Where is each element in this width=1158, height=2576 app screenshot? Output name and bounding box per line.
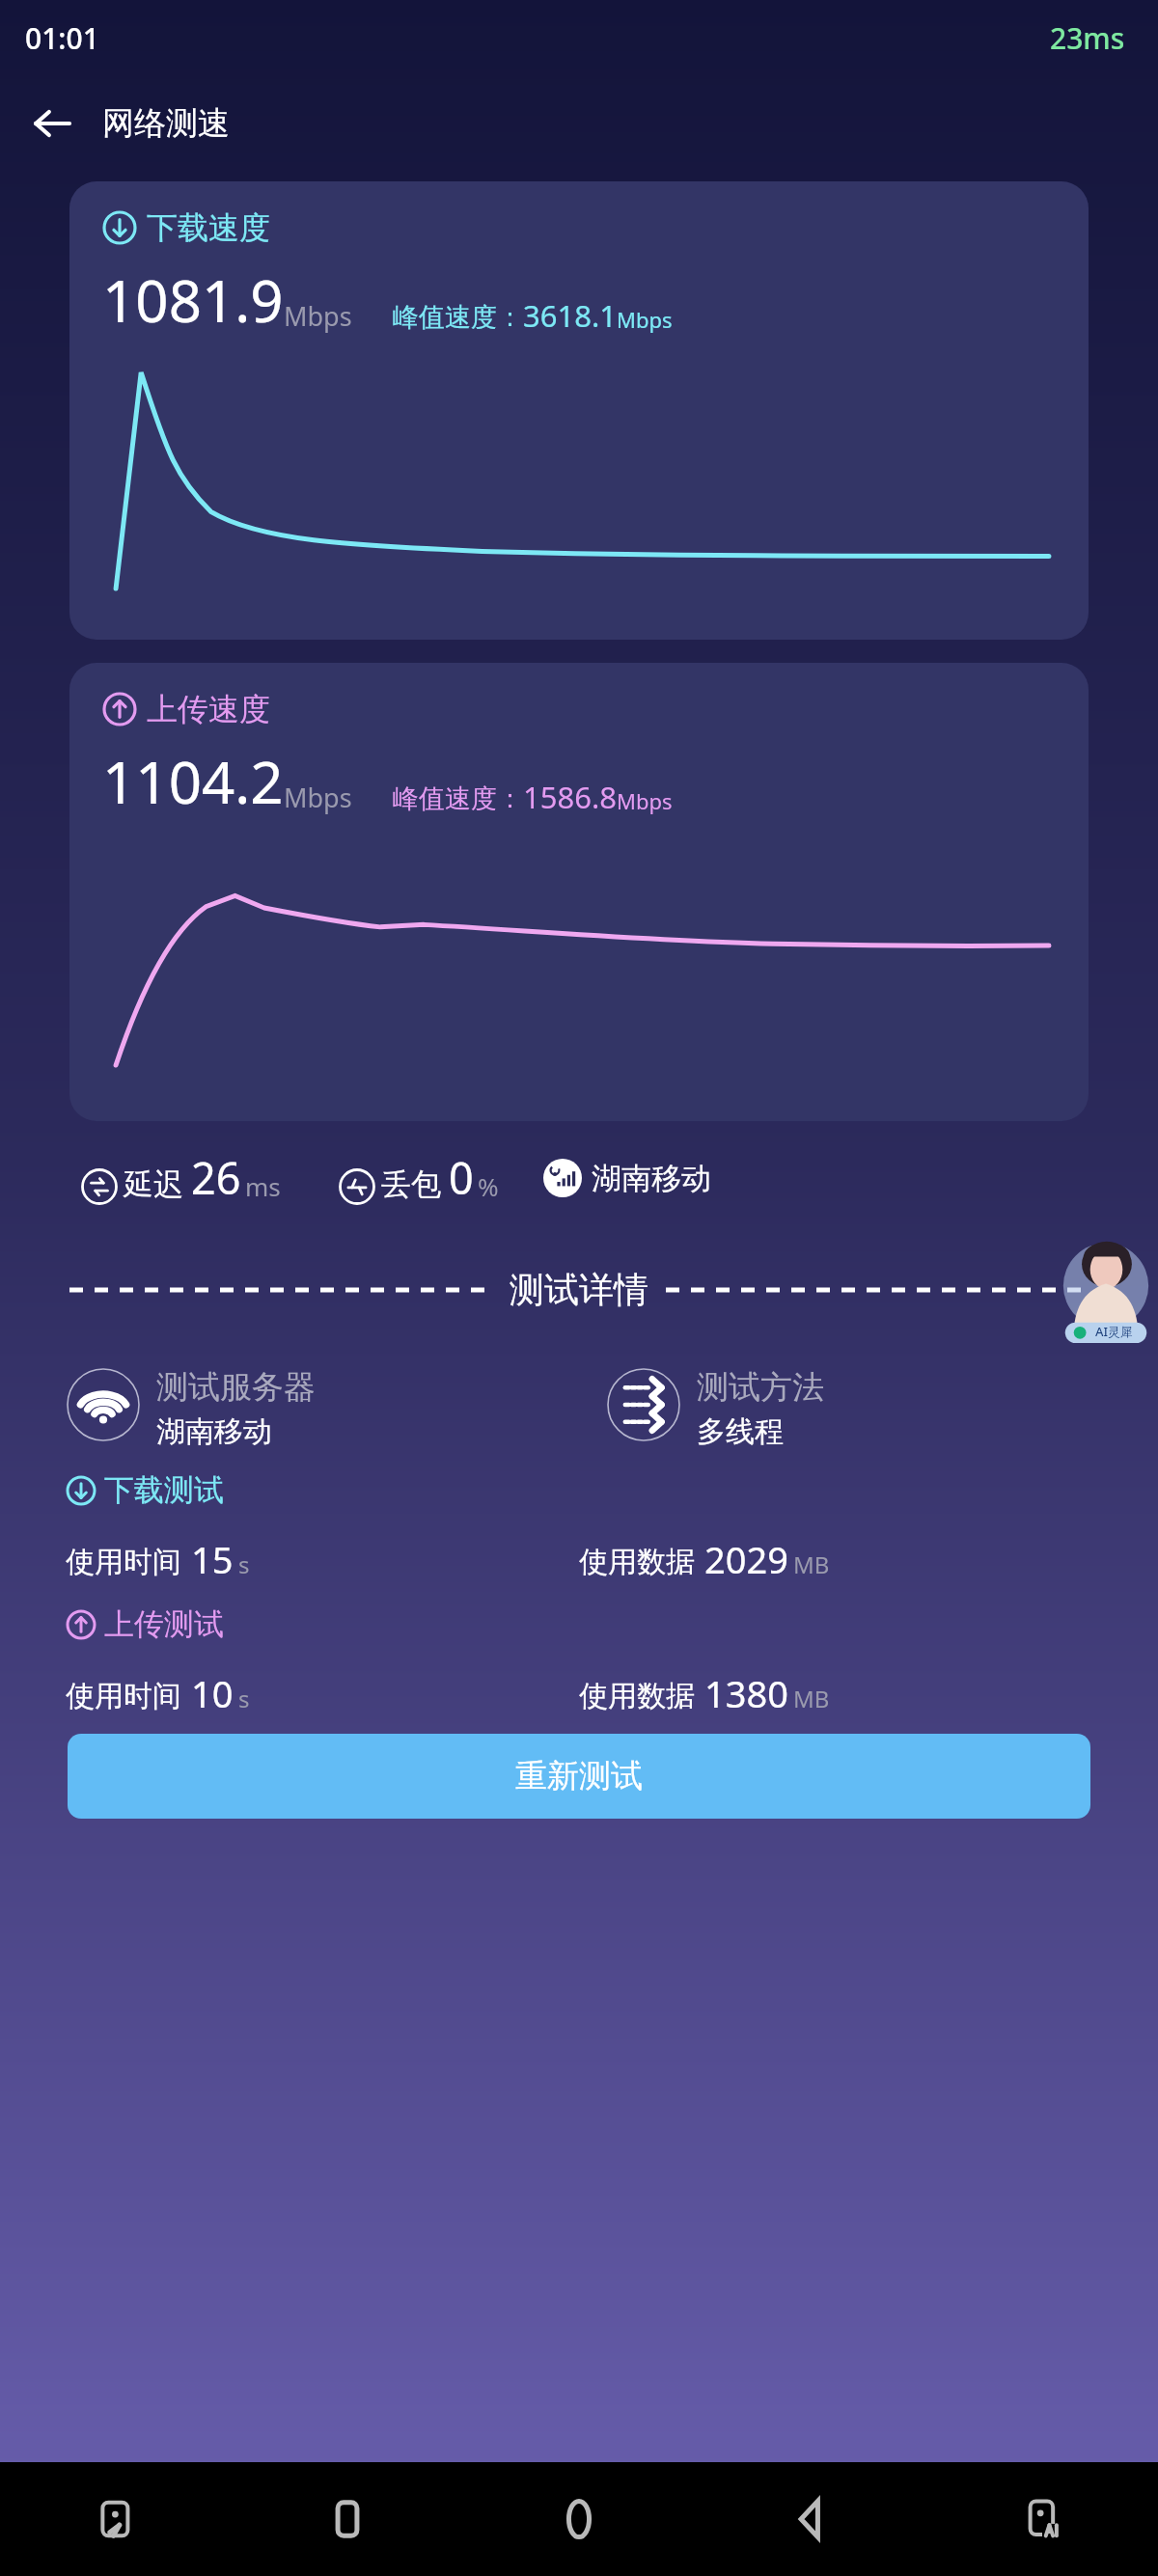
button[interactable]: Screenshot (0, 2462, 232, 2576)
staticText: 峰值速度： (393, 782, 523, 815)
button[interactable]: AI 灵犀 (1060, 1235, 1152, 1343)
button[interactable]: 重新测试 (68, 1734, 1090, 1819)
staticText: 1380 (704, 1668, 788, 1718)
button[interactable]: 测试服务器 (66, 1367, 606, 1450)
button[interactable]: Recents (232, 2462, 463, 2576)
staticText: AI灵犀 (1095, 1323, 1134, 1340)
staticText: Mbps (617, 305, 673, 334)
button[interactable]: 延迟 (81, 1148, 281, 1207)
button[interactable]: Back (23, 95, 81, 152)
staticText: 01:01 (25, 18, 99, 58)
staticText: 上传测试 (104, 1605, 224, 1643)
staticText: MB (793, 1683, 830, 1714)
staticText: 丢包 (381, 1165, 441, 1203)
staticText: 26 (191, 1148, 241, 1207)
staticText: ms (245, 1169, 281, 1203)
button[interactable]: Back (695, 2462, 926, 2576)
staticText: 湖南移动 (156, 1413, 272, 1450)
staticText: 下载测试 (104, 1471, 224, 1509)
staticText: 2029 (704, 1534, 788, 1584)
staticText: 下载速度 (147, 208, 270, 247)
staticText: 重新测试 (515, 1756, 643, 1796)
button[interactable]: Home (463, 2462, 695, 2576)
button[interactable]: 上传速度 (69, 663, 1089, 1121)
button[interactable]: 湖南移动 (543, 1159, 711, 1197)
staticText: 测试服务器 (156, 1367, 316, 1408)
staticText: 1081.9 (102, 260, 284, 340)
staticText: 湖南移动 (592, 1160, 711, 1197)
staticText: 15 (191, 1534, 234, 1584)
staticText: 峰值速度： (393, 301, 523, 334)
staticText: Mbps (284, 780, 352, 815)
staticText: 延迟 (124, 1165, 183, 1203)
staticText: Mbps (284, 298, 352, 334)
staticText: Mbps (617, 786, 673, 815)
staticText: 0 (449, 1148, 474, 1207)
staticText: 测试方法 (697, 1367, 824, 1408)
staticText: 使用时间 (66, 1678, 181, 1714)
button[interactable]: 测试方法 (606, 1367, 1119, 1450)
staticText: 网络测速 (102, 103, 230, 144)
staticText: 测试详情 (510, 1268, 648, 1311)
staticText: 使用时间 (66, 1544, 181, 1580)
staticText: 1104.2 (102, 742, 284, 821)
staticText: 使用数据 (579, 1678, 695, 1714)
staticText: 1586.8 (523, 777, 617, 817)
button[interactable]: 下载速度 (69, 181, 1089, 640)
staticText: 23ms (1050, 18, 1125, 58)
staticText: % (478, 1169, 499, 1203)
staticText: 上传速度 (147, 690, 270, 728)
staticText: 3618.1 (523, 295, 617, 336)
button[interactable]: 丢包 (339, 1148, 499, 1207)
staticText: s (238, 1683, 250, 1714)
staticText: 使用数据 (579, 1544, 695, 1580)
staticText: 10 (191, 1668, 234, 1718)
button[interactable]: AI Assistant (926, 2462, 1158, 2576)
staticText: MB (793, 1548, 830, 1580)
staticText: 多线程 (697, 1413, 784, 1450)
staticText: s (238, 1548, 250, 1580)
